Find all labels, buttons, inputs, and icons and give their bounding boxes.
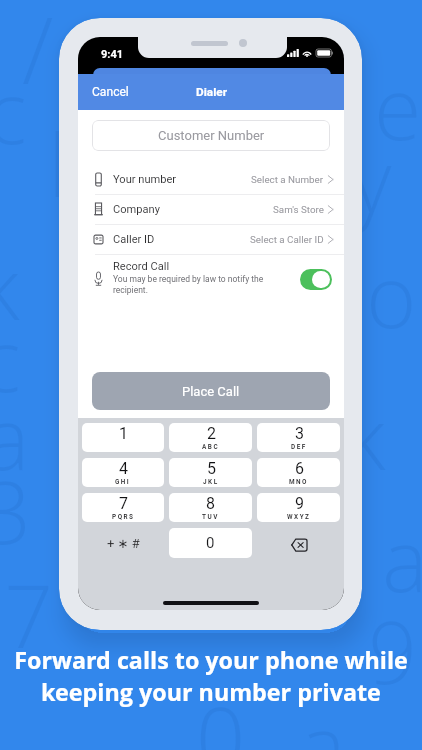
button[interactable]: 6 <box>257 458 340 487</box>
staticText: 3 <box>0 452 32 569</box>
staticText: 9:41 <box>101 48 124 61</box>
staticText: k <box>344 378 386 495</box>
staticText: keeping your number private <box>41 676 381 708</box>
staticText: 0 <box>206 534 215 552</box>
staticText: Your number <box>113 173 177 186</box>
staticText: 0 <box>196 678 246 750</box>
staticText: You may be required by law to notify the… <box>113 274 294 295</box>
staticText: 7 <box>119 494 128 513</box>
staticText: 4 <box>119 459 128 478</box>
staticText: 8 <box>206 494 215 513</box>
staticText: JKL <box>203 478 219 486</box>
staticText: Forward calls to your phone while <box>14 644 408 676</box>
staticText: + ∗ # <box>107 536 140 551</box>
button[interactable]: Record Call <box>78 255 344 303</box>
staticText: 2 <box>207 424 216 443</box>
staticText: PQRS <box>112 513 135 521</box>
button[interactable]: Place Call <box>92 372 330 410</box>
button[interactable]: 3 <box>257 423 340 452</box>
button[interactable]: 9 <box>257 493 340 522</box>
staticText: y <box>352 120 392 237</box>
staticText: TUV <box>202 513 219 521</box>
staticText: MNO <box>289 478 309 486</box>
button[interactable]: 4 <box>82 458 164 487</box>
staticText: WXYZ <box>287 513 311 521</box>
staticText: 9 <box>295 494 304 513</box>
staticText: GHI <box>115 478 131 486</box>
staticText: 9 <box>368 592 418 709</box>
button[interactable]: 7 <box>82 493 164 522</box>
button[interactable]: Company <box>78 195 344 224</box>
staticText: ABC <box>202 443 220 451</box>
staticText: Place Call <box>182 384 240 399</box>
button[interactable]: Record call toggle <box>300 269 332 290</box>
staticText: Sam's Store <box>273 204 324 215</box>
staticText: Select a Number <box>251 174 324 185</box>
button[interactable]: Cancel <box>84 80 137 104</box>
staticText: o <box>366 236 417 353</box>
staticText: Cancel <box>92 85 129 99</box>
staticText: 3 <box>295 424 304 443</box>
button[interactable]: Caller ID <box>78 225 344 254</box>
staticText: Record Call <box>113 260 170 273</box>
button[interactable]: 2 <box>169 423 252 452</box>
staticText: a <box>0 378 30 495</box>
button[interactable]: 0 <box>169 528 252 558</box>
staticText: l <box>48 105 68 222</box>
staticText: Caller ID <box>113 233 155 246</box>
staticText: 5 <box>207 459 216 478</box>
button[interactable]: 5 <box>169 458 252 487</box>
staticText: 1 <box>119 424 128 443</box>
button[interactable]: Customer Number <box>92 120 330 151</box>
button[interactable]: Backspace <box>257 528 340 558</box>
button[interactable]: 1 <box>82 423 164 452</box>
staticText: Dialer <box>196 85 227 99</box>
staticText: Customer Number <box>158 128 265 143</box>
staticText: Company <box>113 203 160 216</box>
button[interactable]: 8 <box>169 493 252 522</box>
button[interactable]: + ∗ # <box>82 528 164 558</box>
staticText: DEF <box>291 443 307 451</box>
staticText: 6 <box>295 459 304 478</box>
staticText: 7 <box>4 556 54 673</box>
button[interactable]: Your number <box>78 165 344 194</box>
staticText: a <box>300 686 346 750</box>
staticText: Select a Caller ID <box>250 234 324 245</box>
